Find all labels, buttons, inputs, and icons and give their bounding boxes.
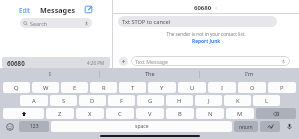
staticText: F: [120, 97, 124, 105]
staticText: 4:20 PM: [87, 60, 105, 66]
staticText: The sender is not in your contact list.: [113, 31, 299, 37]
staticText: G: [148, 97, 153, 105]
button[interactable]: I'm: [200, 68, 299, 80]
button[interactable]: D: [79, 95, 106, 106]
button[interactable]: I: [0, 68, 99, 80]
button[interactable]: J: [195, 95, 222, 106]
staticText: H: [177, 97, 182, 105]
staticText: 123: [30, 123, 39, 130]
button[interactable]: Add attachment: [119, 57, 128, 66]
button[interactable]: return: [234, 121, 258, 132]
staticText: Text Message: [135, 58, 168, 65]
staticText: J: [208, 97, 210, 105]
staticText: I'm: [245, 70, 254, 78]
button[interactable]: R: [90, 82, 117, 93]
button[interactable]: 123: [19, 121, 49, 132]
button[interactable]: I: [208, 82, 236, 93]
button[interactable]: Z: [46, 108, 74, 119]
staticText: Y: [160, 84, 164, 92]
button[interactable]: G: [137, 95, 164, 106]
button[interactable]: A: [20, 95, 48, 106]
button[interactable]: E: [61, 82, 88, 93]
button[interactable]: C: [106, 108, 134, 119]
button[interactable]: O: [238, 82, 266, 93]
staticText: W: [43, 84, 49, 92]
staticText: 60680: [194, 4, 212, 12]
button[interactable]: Dictation: [282, 121, 296, 132]
button[interactable]: K: [224, 95, 251, 106]
button[interactable]: M: [226, 108, 254, 119]
staticText: Z: [58, 110, 62, 118]
button[interactable]: 60680: [113, 3, 299, 13]
staticText: The: [145, 70, 155, 78]
button[interactable]: N: [196, 108, 224, 119]
staticText: C: [118, 110, 122, 118]
button[interactable]: Handwriting: [260, 121, 280, 132]
staticText: L: [265, 97, 269, 105]
button[interactable]: Report Junk: [192, 38, 221, 45]
button[interactable]: The: [100, 68, 199, 80]
button[interactable]: U: [178, 82, 206, 93]
staticText: return: [239, 124, 253, 130]
staticText: 60680: [7, 59, 25, 67]
button[interactable]: B: [166, 108, 194, 119]
staticText: O: [250, 84, 255, 92]
staticText: Messages: [40, 5, 76, 15]
staticText: A: [32, 97, 36, 105]
button[interactable]: 60680: [2, 57, 110, 68]
button[interactable]: T: [119, 82, 146, 93]
button[interactable]: Y: [148, 82, 176, 93]
button[interactable]: S: [50, 95, 77, 106]
button[interactable]: Search: [20, 18, 92, 28]
button[interactable]: Emoji: [3, 121, 17, 132]
staticText: Q: [14, 84, 19, 92]
staticText: U: [190, 84, 195, 92]
staticText: Search: [30, 20, 48, 27]
staticText: D: [90, 97, 95, 105]
staticText: E: [73, 84, 77, 92]
button[interactable]: L: [253, 95, 280, 106]
button[interactable]: V: [136, 108, 164, 119]
staticText: Edit: [19, 6, 31, 14]
button[interactable]: H: [166, 95, 193, 106]
button[interactable]: X: [76, 108, 104, 119]
staticText: Txt STOP to cancel: [122, 18, 171, 26]
button[interactable]: Q: [3, 82, 30, 93]
staticText: B: [178, 110, 182, 118]
button[interactable]: F: [108, 95, 135, 106]
staticText: P: [280, 84, 284, 92]
button[interactable]: space: [51, 121, 232, 132]
staticText: K: [236, 97, 240, 105]
staticText: R: [102, 84, 106, 92]
staticText: Report Junk: [192, 38, 221, 45]
button[interactable]: Edit: [19, 6, 31, 14]
staticText: N: [208, 110, 213, 118]
button[interactable]: Backspace: [256, 108, 296, 119]
staticText: M: [237, 110, 243, 118]
button[interactable]: P: [268, 82, 296, 93]
staticText: T: [131, 84, 135, 92]
staticText: I: [221, 84, 223, 92]
button[interactable]: W: [32, 82, 59, 93]
staticText: S: [62, 97, 66, 105]
button[interactable]: Shift: [3, 108, 44, 119]
staticText: I: [49, 70, 51, 78]
button[interactable]: Txt STOP to cancel: [118, 16, 277, 27]
button[interactable]: Text Message: [131, 56, 290, 66]
staticText: V: [148, 110, 152, 118]
button[interactable]: Compose new message: [84, 5, 93, 14]
staticText: space: [135, 123, 149, 130]
staticText: X: [88, 110, 92, 118]
